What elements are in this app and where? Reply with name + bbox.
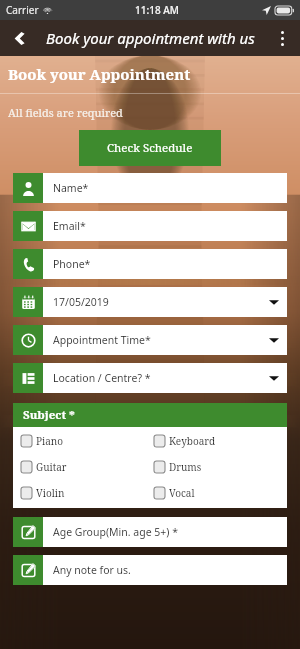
button[interactable]: Guitar <box>21 460 154 474</box>
staticText: Keyboard <box>169 434 216 448</box>
button[interactable]: Vocal <box>154 486 287 500</box>
button[interactable]: Appointment Time* <box>13 325 287 355</box>
staticText: Email* <box>53 219 279 233</box>
staticText: Book your Appointment <box>8 64 191 84</box>
staticText: Book your appointment with us <box>46 28 255 48</box>
staticText: 11:18 AM <box>135 3 179 17</box>
staticText: Age Group(Min. age 5+) * <box>53 525 279 539</box>
button[interactable]: Violin <box>21 486 154 500</box>
staticText: Appointment Time* <box>53 333 269 347</box>
button[interactable]: 17/05/2019 <box>13 287 287 317</box>
button[interactable]: Email* <box>13 211 287 241</box>
staticText: Subject * <box>23 407 75 423</box>
staticText: Piano <box>36 434 64 448</box>
staticText: 17/05/2019 <box>53 295 269 309</box>
staticText: Carrier <box>6 3 39 17</box>
staticText: Name* <box>53 181 279 195</box>
button[interactable]: Keyboard <box>154 434 287 448</box>
button[interactable]: Check Schedule <box>79 130 221 166</box>
staticText: Vocal <box>169 486 195 500</box>
staticText: Guitar <box>36 460 67 474</box>
button[interactable]: Piano <box>21 434 154 448</box>
button[interactable]: Back <box>0 20 36 56</box>
staticText: All fields are required <box>8 105 123 120</box>
staticText: Violin <box>36 486 65 500</box>
button[interactable]: Name* <box>13 173 287 203</box>
staticText: Drums <box>169 460 202 474</box>
staticText: Location / Centre? * <box>53 371 269 385</box>
button[interactable]: More options <box>264 20 300 56</box>
staticText: Check Schedule <box>107 140 193 156</box>
button[interactable]: Phone* <box>13 249 287 279</box>
button[interactable]: Age Group(Min. age 5+) * <box>13 517 287 547</box>
staticText: Any note for us. <box>53 563 279 577</box>
staticText: Phone* <box>53 257 279 271</box>
button[interactable]: Any note for us. <box>13 555 287 585</box>
button[interactable]: Location / Centre? * <box>13 363 287 393</box>
button[interactable]: Drums <box>154 460 287 474</box>
